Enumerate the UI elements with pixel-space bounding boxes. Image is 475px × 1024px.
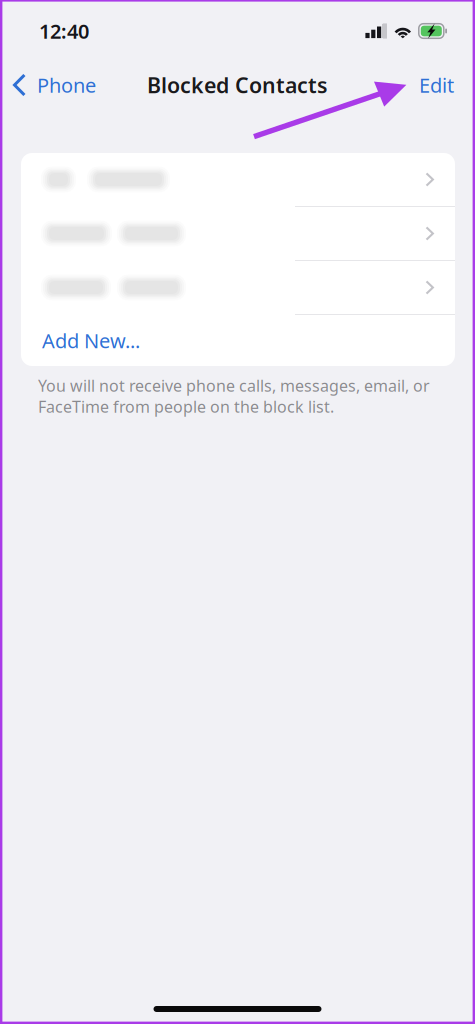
button[interactable]: Edit — [419, 64, 475, 106]
staticText: FaceTime from people on the block list. — [38, 396, 334, 417]
button[interactable] — [21, 153, 455, 206]
staticText: You will not receive phone calls, messag… — [38, 375, 430, 396]
staticText: Add New... — [42, 327, 140, 354]
staticText: 12:40 — [39, 18, 89, 44]
staticText: Phone — [37, 72, 96, 98]
staticText: Edit — [419, 72, 454, 98]
button[interactable]: Add New... — [21, 315, 455, 366]
button[interactable] — [21, 207, 455, 260]
staticText: Blocked Contacts — [147, 71, 328, 99]
button[interactable]: Phone — [0, 64, 96, 106]
button[interactable] — [21, 261, 455, 314]
